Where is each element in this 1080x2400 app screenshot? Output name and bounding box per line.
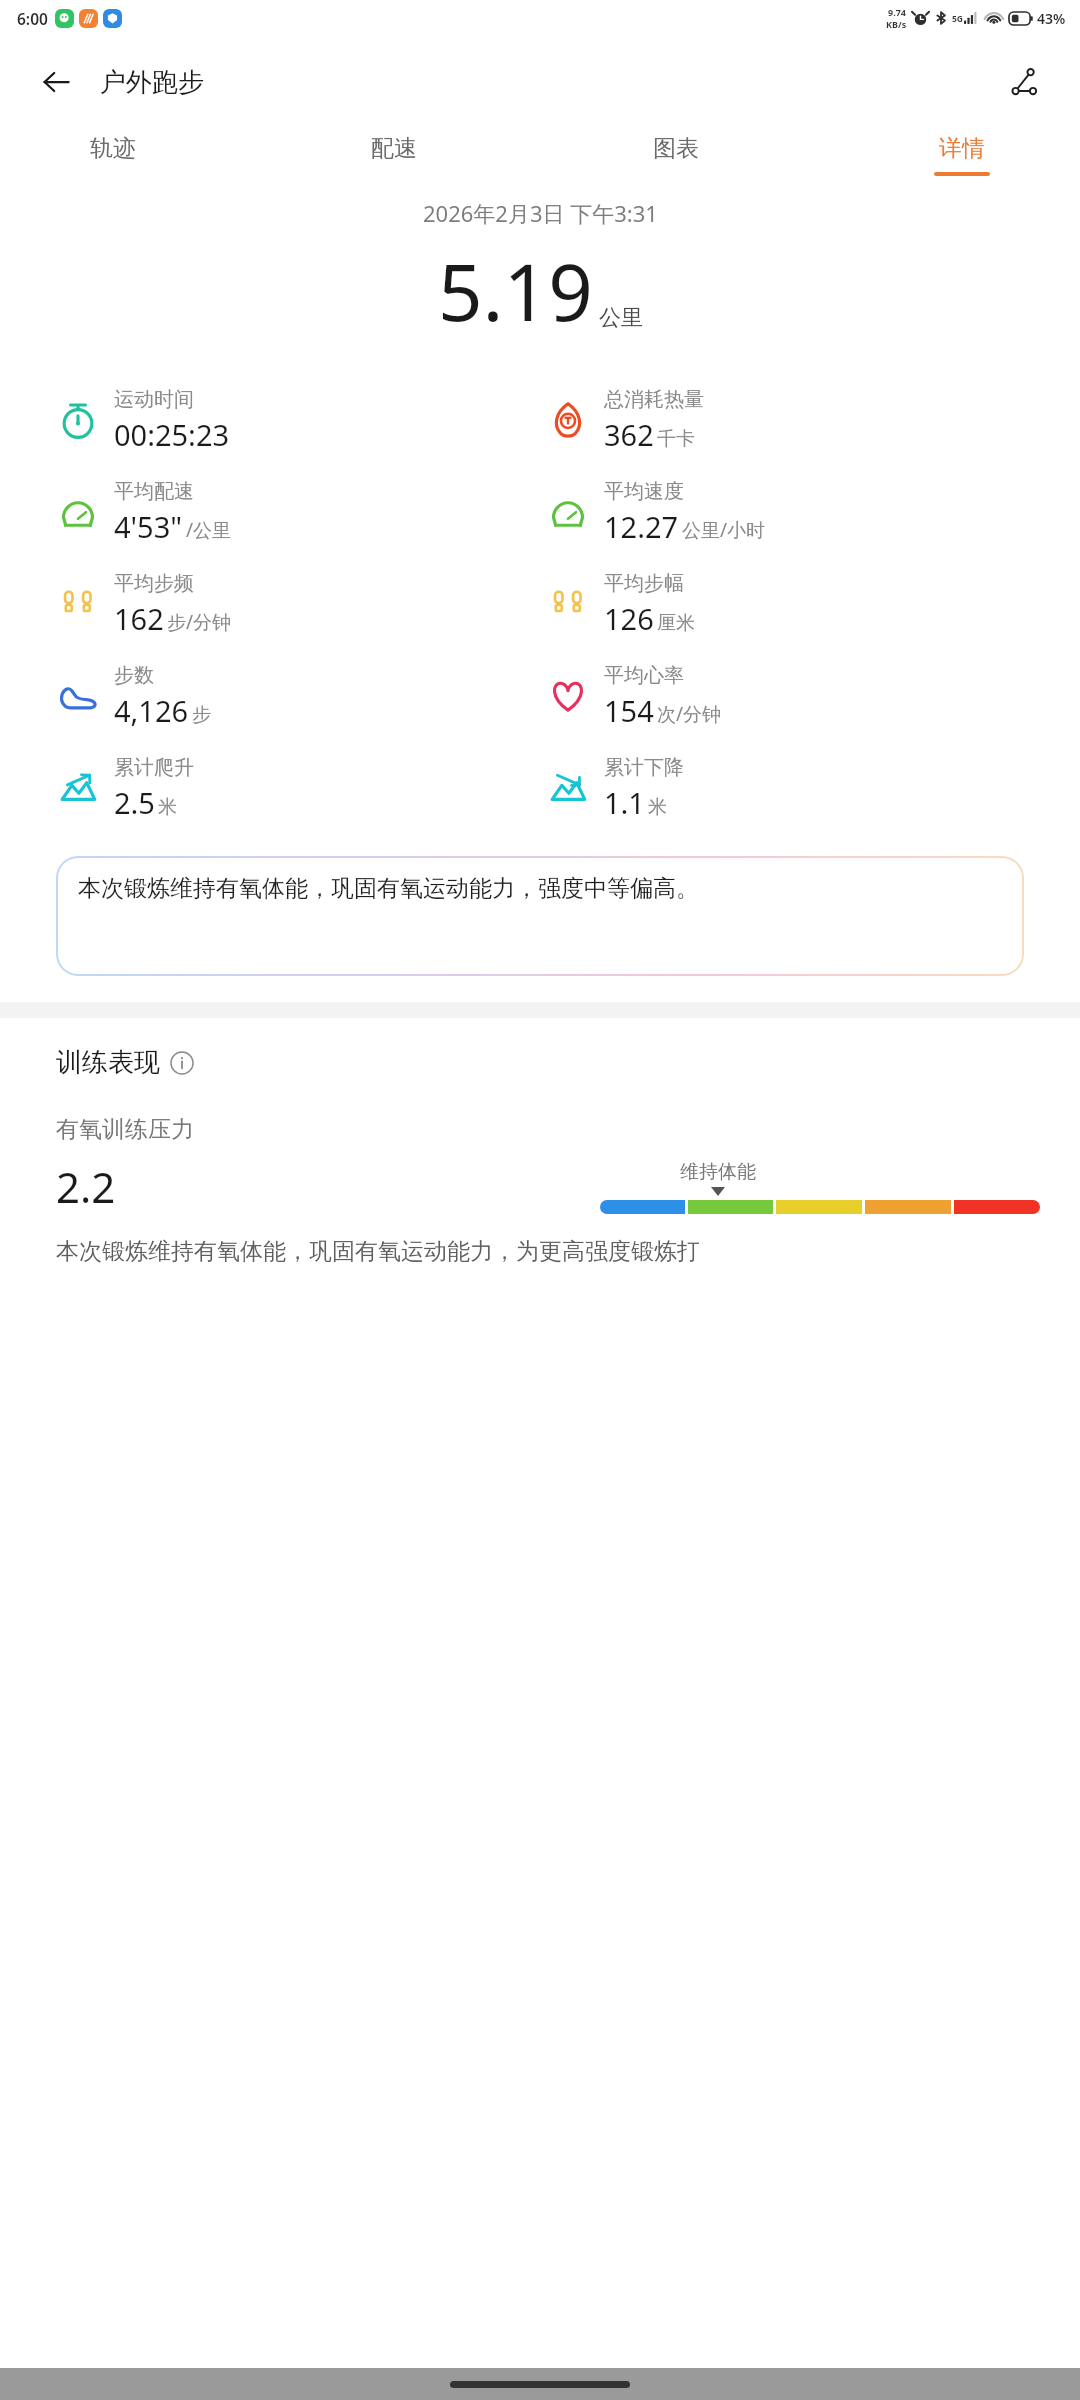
button[interactable]: 累计爬升 [56,742,540,834]
staticText: 2.2 [56,1158,116,1215]
staticText: 步数 [114,663,154,688]
staticText: 本次锻炼维持有氧体能，巩固有氧运动能力，为更高强度锻炼打 [56,1237,700,1266]
button[interactable]: 累计下降 [546,742,1080,834]
staticText: 米 [158,795,177,819]
button[interactable]: 运动时间 [56,374,540,466]
staticText: 公里 [599,304,643,332]
staticText: 训练表现 [56,1046,160,1079]
staticText: 轨迹 [90,134,136,163]
staticText: 步/分钟 [167,609,232,635]
staticText: 162 [114,599,164,638]
staticText: 00:25:23 [114,415,230,454]
staticText: 步 [192,703,211,727]
staticText: 126 [604,599,654,638]
staticText: 千卡 [657,427,695,451]
staticText: 5.19 [438,238,593,344]
button[interactable]: 轨迹 [80,128,146,182]
staticText: 公里/小时 [682,517,766,543]
staticText: 累计下降 [604,755,684,780]
staticText: 户外跑步 [100,66,204,99]
other: Info [170,1051,194,1075]
staticText: 4,126 [114,691,189,730]
staticText: 平均速度 [604,479,684,504]
staticText: 1.1 [604,783,645,822]
button[interactable]: 平均心率 [546,650,1080,742]
button[interactable]: 详情 [924,128,1000,182]
staticText: 平均配速 [114,479,194,504]
staticText: 平均心率 [604,663,684,688]
staticText: 362 [604,415,654,454]
button[interactable]: 平均速度 [546,466,1080,558]
staticText: 平均步幅 [604,571,684,596]
staticText: 4'53" [114,507,183,546]
staticText: 平均步频 [114,571,194,596]
staticText: 6:00 [17,8,48,29]
staticText: /公里 [186,517,232,543]
button[interactable]: 图表 [643,128,709,182]
staticText: 图表 [653,134,699,163]
staticText: 详情 [939,134,985,163]
button[interactable]: 配速 [361,128,427,182]
staticText: 5G [952,13,964,25]
staticText: 9.74 [888,6,906,18]
button[interactable]: 本次锻炼维持有氧体能，巩固有氧运动能力，强度中等偏高。 [58,858,1022,974]
button[interactable]: 平均配速 [56,466,540,558]
staticText: 运动时间 [114,387,194,412]
staticText: 本次锻炼维持有氧体能，巩固有氧运动能力，强度中等偏高。 [78,874,699,903]
staticText: 2026年2月3日 下午3:31 [423,198,658,228]
staticText: 总消耗热量 [604,387,704,412]
button[interactable]: Share [998,56,1050,108]
staticText: 配速 [371,134,417,163]
button[interactable]: Back [30,56,82,108]
staticText: 厘米 [657,611,695,635]
button[interactable]: 平均步幅 [546,558,1080,650]
button[interactable]: 步数 [56,650,540,742]
staticText: 维持体能 [680,1160,756,1184]
button[interactable]: 总消耗热量 [546,374,1080,466]
staticText: 次/分钟 [657,701,722,727]
staticText: 43% [1037,9,1066,28]
button[interactable]: 平均步频 [56,558,540,650]
staticText: 12.27 [604,507,679,546]
staticText: KB/s [886,18,907,30]
staticText: 有氧训练压力 [56,1115,194,1144]
staticText: 米 [648,795,667,819]
staticText: 累计爬升 [114,755,194,780]
button[interactable]: 训练表现 [56,1046,194,1079]
staticText: 154 [604,691,654,730]
staticText: 2.5 [114,783,155,822]
